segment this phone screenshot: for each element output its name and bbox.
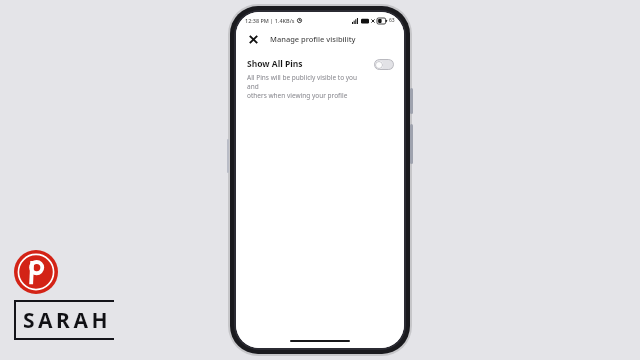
button[interactable]: Close bbox=[245, 31, 261, 47]
button[interactable]: Show All Pins toggle, off bbox=[374, 59, 394, 70]
staticText: All Pins will be publicly visible to you… bbox=[247, 73, 368, 100]
staticText: Show All Pins bbox=[247, 58, 303, 70]
staticText: 63 bbox=[389, 17, 395, 24]
staticText: SARAH bbox=[23, 306, 111, 335]
staticText: 12:38 PM | 1.4KB/s bbox=[245, 17, 295, 24]
staticText: Manage profile visibility bbox=[270, 34, 356, 44]
button[interactable]: Show All Pins bbox=[236, 56, 404, 104]
